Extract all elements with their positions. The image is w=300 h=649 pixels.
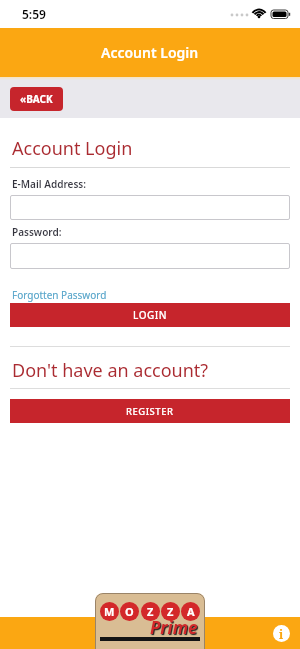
staticText: Don't have an account? xyxy=(12,358,209,383)
button[interactable]: «BACK xyxy=(10,87,63,111)
staticText: M xyxy=(104,604,115,619)
staticText: Account Login xyxy=(101,43,199,62)
staticText: Account Login xyxy=(12,136,133,161)
staticText: A xyxy=(187,604,195,619)
button[interactable]: i xyxy=(273,625,290,642)
button[interactable]: REGISTER xyxy=(10,399,290,423)
staticText: «BACK xyxy=(20,92,53,106)
button[interactable]: LOGIN xyxy=(10,303,290,327)
staticText: O xyxy=(125,604,134,619)
staticText: Z xyxy=(147,604,154,619)
button[interactable]: Forgotten Password xyxy=(12,288,107,302)
staticText: Prime xyxy=(150,616,198,639)
staticText: LOGIN xyxy=(133,308,168,322)
staticText: Password: xyxy=(12,225,62,239)
staticText: Z xyxy=(167,604,174,619)
staticText: i xyxy=(279,626,284,642)
staticText: E-Mail Address: xyxy=(12,177,87,191)
staticText: 5:59 xyxy=(22,6,46,22)
staticText: REGISTER xyxy=(126,405,174,418)
